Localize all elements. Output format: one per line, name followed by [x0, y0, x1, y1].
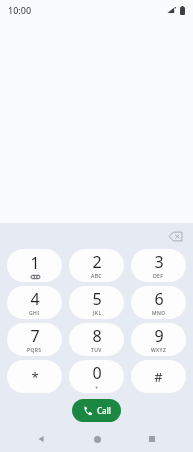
staticText: MNO [152, 310, 166, 317]
staticText: 5 [92, 288, 102, 310]
staticText: DEF [153, 273, 164, 280]
button[interactable]: 7 [7, 323, 62, 356]
button[interactable]: 0 [69, 360, 124, 393]
button[interactable]: 6 [131, 286, 186, 319]
staticText: JKL [93, 310, 102, 317]
staticText: # [154, 368, 163, 386]
staticText: 9 [154, 325, 164, 347]
staticText: + [95, 384, 99, 392]
staticText: 0 [92, 362, 102, 384]
button[interactable]: 9 [131, 323, 186, 356]
staticText: PQRS [27, 347, 42, 354]
staticText: ABC [91, 273, 102, 280]
staticText: 10:00 [8, 4, 32, 16]
button[interactable]: Recent apps [141, 428, 163, 450]
staticText: GHI [29, 310, 40, 317]
staticText: 7 [30, 325, 40, 347]
staticText: WXYZ [151, 347, 167, 354]
button[interactable]: 2 [69, 249, 124, 282]
button[interactable]: 8 [69, 323, 124, 356]
staticText: 3 [154, 251, 164, 273]
staticText: 4 [30, 288, 40, 310]
button[interactable]: 3 [131, 249, 186, 282]
staticText: 8 [92, 325, 102, 347]
button[interactable]: 4 [7, 286, 62, 319]
button[interactable]: Back [30, 428, 52, 450]
staticText: 1 [30, 252, 40, 274]
button[interactable]: Backspace [165, 226, 185, 246]
staticText: * [31, 368, 39, 386]
staticText: Call [97, 405, 111, 416]
button[interactable]: * [7, 360, 62, 393]
button[interactable]: # [131, 360, 186, 393]
button[interactable]: 1 [7, 249, 62, 282]
staticText: TUV [91, 347, 102, 354]
staticText: 2 [92, 251, 102, 273]
button[interactable]: 5 [69, 286, 124, 319]
staticText: 6 [154, 288, 164, 310]
button[interactable]: Call [72, 399, 121, 422]
button[interactable]: Home [86, 428, 108, 450]
